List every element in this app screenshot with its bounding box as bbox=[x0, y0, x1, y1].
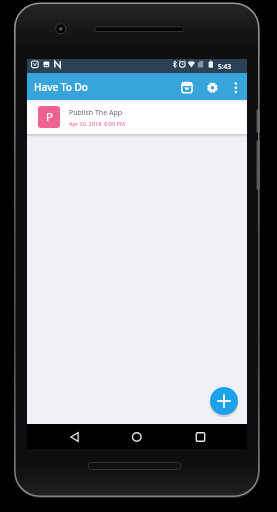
staticText: P bbox=[46, 109, 53, 125]
button[interactable] bbox=[233, 77, 247, 91]
button[interactable] bbox=[210, 387, 238, 415]
staticText: Publish The App bbox=[69, 108, 123, 118]
button[interactable] bbox=[101, 424, 174, 449]
button[interactable] bbox=[174, 424, 247, 449]
button[interactable]: P bbox=[27, 100, 247, 134]
button[interactable] bbox=[193, 77, 213, 97]
button[interactable] bbox=[213, 77, 233, 97]
staticText: 5:43 bbox=[218, 62, 231, 71]
staticText: Have To Do bbox=[34, 80, 88, 94]
button[interactable] bbox=[27, 424, 101, 449]
staticText: Apr 30, 2018 6:00 PM bbox=[69, 120, 125, 127]
